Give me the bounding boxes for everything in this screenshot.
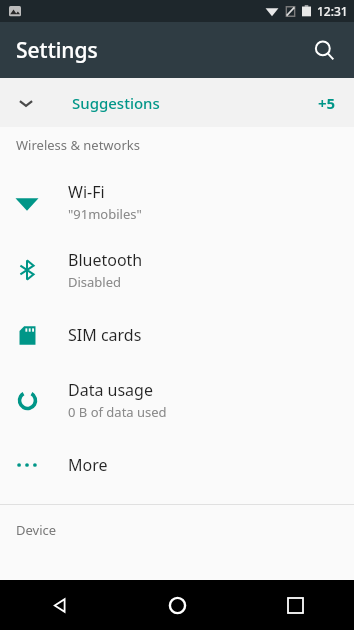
staticText: 0 B of data used (68, 403, 167, 421)
button[interactable]: Data usage (0, 366, 354, 434)
button[interactable]: SIM cards (0, 304, 354, 366)
button[interactable]: Home (118, 580, 236, 630)
staticText: SIM cards (68, 324, 142, 346)
button[interactable]: Search (302, 28, 346, 72)
button[interactable]: More (0, 434, 354, 496)
staticText: Disabled (68, 273, 122, 291)
staticText: More (68, 454, 108, 476)
staticText: Device (16, 521, 57, 539)
staticText: +5 (318, 93, 336, 113)
button[interactable]: Suggestions (0, 78, 354, 127)
button[interactable]: Bluetooth (0, 236, 354, 304)
staticText: Wireless & networks (16, 136, 140, 154)
button[interactable]: Recents (236, 580, 354, 630)
staticText: Settings (16, 36, 98, 65)
staticText: "91mobiles" (68, 205, 142, 223)
button[interactable]: Back (0, 580, 118, 630)
staticText: Wi-Fi (68, 181, 105, 203)
button[interactable]: Wi-Fi (0, 168, 354, 236)
staticText: Suggestions (72, 93, 160, 113)
staticText: Data usage (68, 379, 153, 401)
staticText: Bluetooth (68, 249, 143, 271)
staticText: 12:31 (317, 3, 348, 19)
